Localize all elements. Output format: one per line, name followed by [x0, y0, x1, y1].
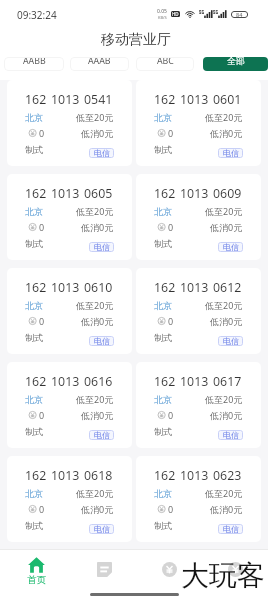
staticText: 0605	[84, 185, 113, 199]
staticText: 北京	[154, 112, 172, 123]
button[interactable]: 162	[7, 456, 132, 542]
staticText: AAAB	[88, 57, 111, 67]
staticText: 低消0元	[210, 315, 243, 327]
staticText: 0	[39, 409, 45, 421]
staticText: 电信	[223, 430, 239, 440]
staticText: 低消0元	[81, 127, 114, 139]
staticText: 北京	[25, 300, 43, 311]
staticText: 低至20元	[205, 111, 243, 123]
button[interactable]: 首页	[3, 550, 70, 588]
staticText: 电信	[223, 242, 239, 252]
button[interactable]: 162	[136, 268, 261, 354]
staticText: 1013	[180, 373, 209, 387]
staticText: 低至20元	[205, 299, 243, 311]
staticText: 162	[154, 279, 176, 293]
button[interactable]: ABC	[136, 57, 194, 71]
staticText: 低消0元	[81, 221, 114, 233]
staticText: 1013	[180, 279, 209, 293]
staticText: 0612	[213, 279, 242, 293]
staticText: 162	[25, 467, 47, 481]
button[interactable]: 162	[7, 268, 132, 354]
staticText: 北京	[154, 488, 172, 499]
staticText: 低消0元	[81, 503, 114, 515]
staticText: 0	[39, 503, 45, 515]
staticText: 低至20元	[205, 487, 243, 499]
staticText: 北京	[154, 394, 172, 405]
staticText: 0	[39, 127, 45, 139]
staticText: 制式	[154, 520, 172, 531]
staticText: 0541	[84, 91, 113, 105]
staticText: ABC	[157, 57, 174, 67]
staticText: 电信	[94, 148, 110, 158]
button[interactable]: 162	[136, 174, 261, 260]
staticText: 制式	[154, 144, 172, 155]
staticText: 1013	[51, 91, 80, 105]
staticText: 0616	[84, 373, 113, 387]
staticText: 0	[168, 221, 174, 233]
staticText: 低消0元	[210, 409, 243, 421]
button[interactable]: 162	[136, 362, 261, 448]
staticText: 162	[25, 91, 47, 105]
staticText: 低消0元	[81, 315, 114, 327]
button[interactable]: 162	[7, 80, 132, 166]
staticText: 84	[236, 11, 243, 18]
button[interactable]: 全部	[203, 57, 268, 71]
staticText: 1013	[180, 185, 209, 199]
staticText: 电信	[94, 430, 110, 440]
staticText: 0610	[84, 279, 113, 293]
button[interactable]: 162	[136, 456, 261, 542]
staticText: 制式	[154, 426, 172, 437]
staticText: 低消0元	[81, 409, 114, 421]
staticText: KB/S	[158, 15, 167, 20]
button[interactable]: 162	[136, 80, 261, 166]
staticText: 低消0元	[210, 127, 243, 139]
staticText: 北京	[25, 488, 43, 499]
staticText: 低至20元	[76, 487, 114, 499]
staticText: 移动营业厅	[101, 31, 171, 49]
button[interactable]: 162	[7, 362, 132, 448]
staticText: 制式	[154, 332, 172, 343]
staticText: 低至20元	[205, 393, 243, 405]
staticText: 0617	[213, 373, 242, 387]
staticText: 北京	[154, 300, 172, 311]
staticText: 162	[25, 279, 47, 293]
staticText: 电信	[94, 242, 110, 252]
staticText: 制式	[25, 520, 43, 531]
staticText: 首页	[27, 574, 46, 586]
staticText: 0	[168, 127, 174, 139]
staticText: 0	[168, 503, 174, 515]
button[interactable]: AAAB	[70, 57, 129, 71]
staticText: 1013	[180, 467, 209, 481]
staticText: 0601	[213, 91, 242, 105]
staticText: 162	[154, 185, 176, 199]
staticText: 1013	[180, 91, 209, 105]
staticText: 162	[25, 373, 47, 387]
staticText: 低至20元	[76, 205, 114, 217]
staticText: 电信	[94, 524, 110, 534]
staticText: 0	[168, 315, 174, 327]
staticText: 0623	[213, 467, 242, 481]
staticText: 162	[154, 91, 176, 105]
staticText: 0.05	[157, 8, 167, 15]
button[interactable]: 162	[7, 174, 132, 260]
staticText: 北京	[25, 394, 43, 405]
staticText: 制式	[25, 144, 43, 155]
staticText: 09:32:24	[17, 8, 57, 22]
staticText: 低消0元	[210, 221, 243, 233]
button[interactable]: AABB	[4, 57, 64, 71]
staticText: 电信	[223, 148, 239, 158]
staticText: 162	[154, 373, 176, 387]
staticText: 制式	[25, 332, 43, 343]
staticText: 低至20元	[76, 299, 114, 311]
staticText: 1013	[51, 279, 80, 293]
staticText: 大玩客	[181, 558, 265, 593]
staticText: 0609	[213, 185, 242, 199]
button[interactable]: 充值	[136, 550, 202, 588]
button[interactable]: 订单	[70, 550, 136, 588]
staticText: 北京	[154, 206, 172, 217]
staticText: 1013	[51, 373, 80, 387]
button[interactable]: 我的	[202, 550, 268, 588]
staticText: 制式	[154, 238, 172, 249]
staticText: 低至20元	[76, 393, 114, 405]
staticText: AABB	[23, 57, 46, 67]
